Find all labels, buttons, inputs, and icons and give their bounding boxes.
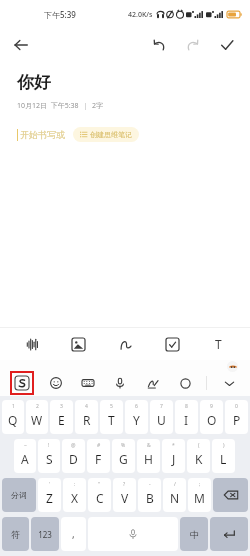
staticText: M (194, 490, 205, 506)
button[interactable]: # (87, 439, 110, 473)
button[interactable]: Redo (180, 32, 206, 58)
button[interactable]: ) (212, 439, 235, 473)
staticText: K (195, 451, 203, 467)
button[interactable]: Audio (17, 329, 47, 359)
button[interactable]: ; (188, 478, 211, 512)
button[interactable]: * (162, 439, 185, 473)
staticText: T (108, 412, 115, 428)
button[interactable]: Emoji (45, 372, 67, 394)
button[interactable]: Checklist (157, 329, 187, 359)
button[interactable]: & (137, 439, 160, 473)
button[interactable]: ' (38, 478, 61, 512)
button[interactable]: , (61, 517, 86, 551)
staticText: O (207, 412, 217, 428)
button[interactable]: 7 (150, 400, 173, 434)
button[interactable]: Handwriting input (142, 372, 164, 394)
button[interactable]: 中 (180, 517, 208, 551)
staticText: ' (49, 481, 51, 488)
staticText: E (58, 412, 65, 428)
button[interactable]: Search (174, 372, 196, 394)
button[interactable]: ( (187, 439, 210, 473)
staticText: 9 (210, 403, 213, 410)
staticText: 6 (135, 403, 138, 410)
button[interactable]: Done (214, 32, 240, 58)
staticText: T (215, 336, 222, 352)
button[interactable]: " (88, 478, 111, 512)
staticText: A (21, 451, 29, 467)
staticText: C (96, 490, 104, 506)
button[interactable]: Keyboard layout (77, 372, 99, 394)
button[interactable]: 8 (175, 400, 198, 434)
staticText: H (144, 451, 153, 467)
button[interactable]: 创建思维笔记 (73, 127, 139, 142)
button[interactable]: ! (38, 439, 60, 473)
staticText: @ (71, 442, 76, 449)
staticText: 2字 (92, 101, 104, 111)
staticText: 4 (85, 403, 88, 410)
button[interactable]: 2 (26, 400, 48, 434)
button[interactable]: Handwriting (110, 329, 140, 359)
staticText: 42.0K/s (128, 10, 153, 20)
staticText: N (170, 490, 180, 506)
button[interactable]: / (163, 478, 186, 512)
button[interactable]: 0 (225, 400, 248, 434)
button[interactable]: 4 (75, 400, 98, 434)
button[interactable]: 6 (125, 400, 148, 434)
staticText: # (97, 442, 101, 449)
staticText: 下午5:39 (44, 9, 76, 20)
staticText: 你好 (17, 72, 51, 93)
button[interactable]: 分词 (2, 478, 36, 512)
staticText: 5 (110, 403, 113, 410)
button[interactable]: Space (88, 517, 178, 551)
button[interactable]: @ (62, 439, 85, 473)
staticText: 符 (11, 529, 20, 540)
button[interactable]: Account (227, 361, 238, 372)
staticText: ? (123, 481, 126, 488)
staticText: % (121, 442, 126, 449)
staticText: 1 (12, 403, 15, 410)
button[interactable]: 1 (2, 400, 24, 434)
button[interactable]: Back (8, 32, 34, 58)
staticText: P (233, 412, 241, 428)
button[interactable]: ? (113, 478, 136, 512)
staticText: G (119, 451, 128, 467)
staticText: 创建思维笔记 (90, 130, 132, 139)
staticText: L (220, 451, 227, 467)
staticText: ) (223, 442, 225, 449)
button[interactable]: Backspace (213, 478, 248, 512)
button[interactable]: 9 (200, 400, 223, 434)
staticText: 中 (190, 529, 199, 540)
staticText: 2 (36, 403, 39, 410)
button[interactable]: Text format (203, 329, 233, 359)
button[interactable]: ~ (14, 439, 36, 473)
button[interactable]: - (138, 478, 161, 512)
staticText: 10月12日 下午5:38 (17, 101, 79, 111)
staticText: R (83, 412, 91, 428)
button[interactable]: Image (63, 329, 93, 359)
button[interactable]: Enter (210, 517, 248, 551)
staticText: 0 (235, 403, 238, 410)
staticText: V (121, 490, 129, 506)
staticText: B (146, 490, 154, 506)
staticText: 7 (160, 403, 163, 410)
staticText: ~ (24, 442, 27, 449)
staticText: 8 (185, 403, 188, 410)
button[interactable]: 符 (2, 517, 29, 551)
button[interactable]: Voice input (109, 372, 131, 394)
staticText: F (95, 451, 102, 467)
button[interactable]: Input method (10, 371, 34, 395)
button[interactable]: Undo (146, 32, 172, 58)
button[interactable]: 5 (100, 400, 123, 434)
button[interactable]: 3 (50, 400, 73, 434)
staticText: 开始书写或 (20, 129, 65, 140)
staticText: 123 (38, 529, 52, 540)
button[interactable]: 123 (31, 517, 59, 551)
staticText: " (98, 481, 101, 488)
staticText: 3 (60, 403, 63, 410)
button[interactable]: % (112, 439, 135, 473)
button[interactable]: : (63, 478, 86, 512)
staticText: U (157, 412, 166, 428)
staticText: W (31, 412, 43, 428)
staticText: : (74, 481, 76, 488)
button[interactable]: Collapse keyboard (218, 372, 240, 394)
